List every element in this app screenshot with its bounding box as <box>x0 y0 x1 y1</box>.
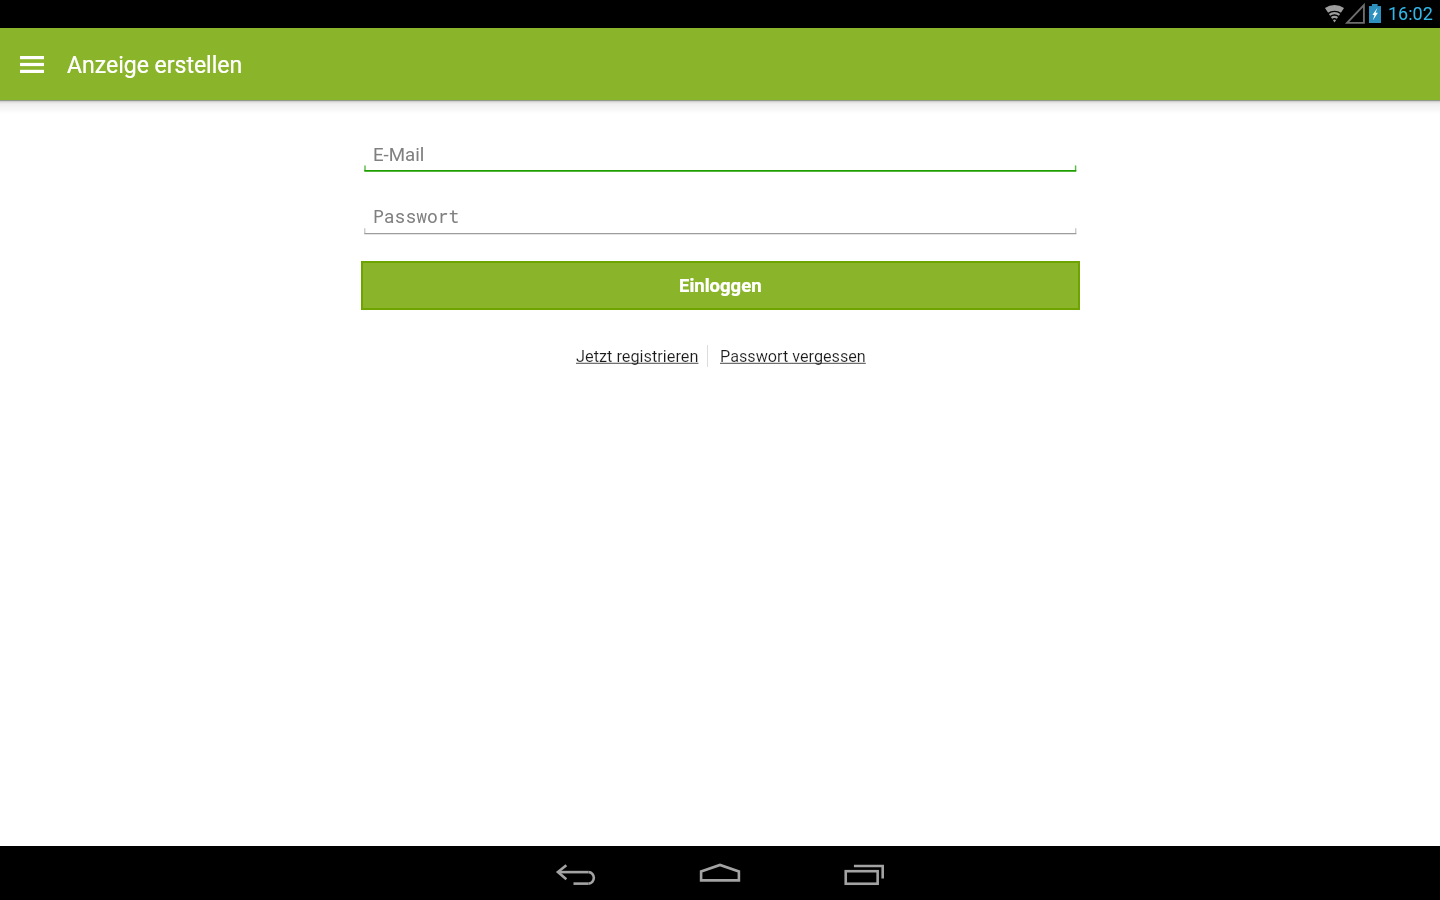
button[interactable]: Passwort vergessen <box>720 347 866 366</box>
button[interactable]: Back <box>555 846 597 900</box>
staticText: Passwort vergessen <box>720 347 866 366</box>
button[interactable]: Recent apps <box>843 846 885 900</box>
staticText: Jetzt registrieren <box>576 347 699 366</box>
staticText: E-Mail <box>373 144 425 166</box>
button[interactable]: Open navigation drawer <box>8 40 56 88</box>
staticText: 16:02 <box>1388 3 1433 24</box>
staticText: Einloggen <box>679 275 762 297</box>
staticText: Anzeige erstellen <box>67 52 243 79</box>
staticText: Passwort <box>373 204 460 228</box>
button[interactable]: Home <box>699 846 741 900</box>
button[interactable]: Einloggen <box>361 261 1080 310</box>
button[interactable]: E-Mail input field <box>361 131 1080 176</box>
button[interactable]: Password input field <box>361 194 1080 239</box>
button[interactable]: Jetzt registrieren <box>576 347 699 366</box>
